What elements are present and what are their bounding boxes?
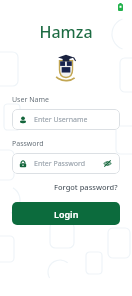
staticText: Enter Password — [34, 159, 102, 169]
button[interactable]: Login — [12, 202, 120, 225]
staticText: User Name — [12, 95, 49, 105]
staticText: Password — [12, 139, 44, 149]
button[interactable]: Forgot password? — [52, 181, 120, 193]
button[interactable]: Enter Username — [12, 109, 120, 130]
staticText: Login — [54, 208, 79, 220]
other: University crest logo — [54, 52, 78, 79]
staticText: Hamza — [39, 21, 93, 43]
button[interactable]: Show password — [102, 158, 113, 169]
button[interactable]: Enter Password — [12, 153, 120, 174]
staticText: Enter Username — [34, 115, 88, 125]
staticText: Forgot password? — [54, 182, 118, 192]
